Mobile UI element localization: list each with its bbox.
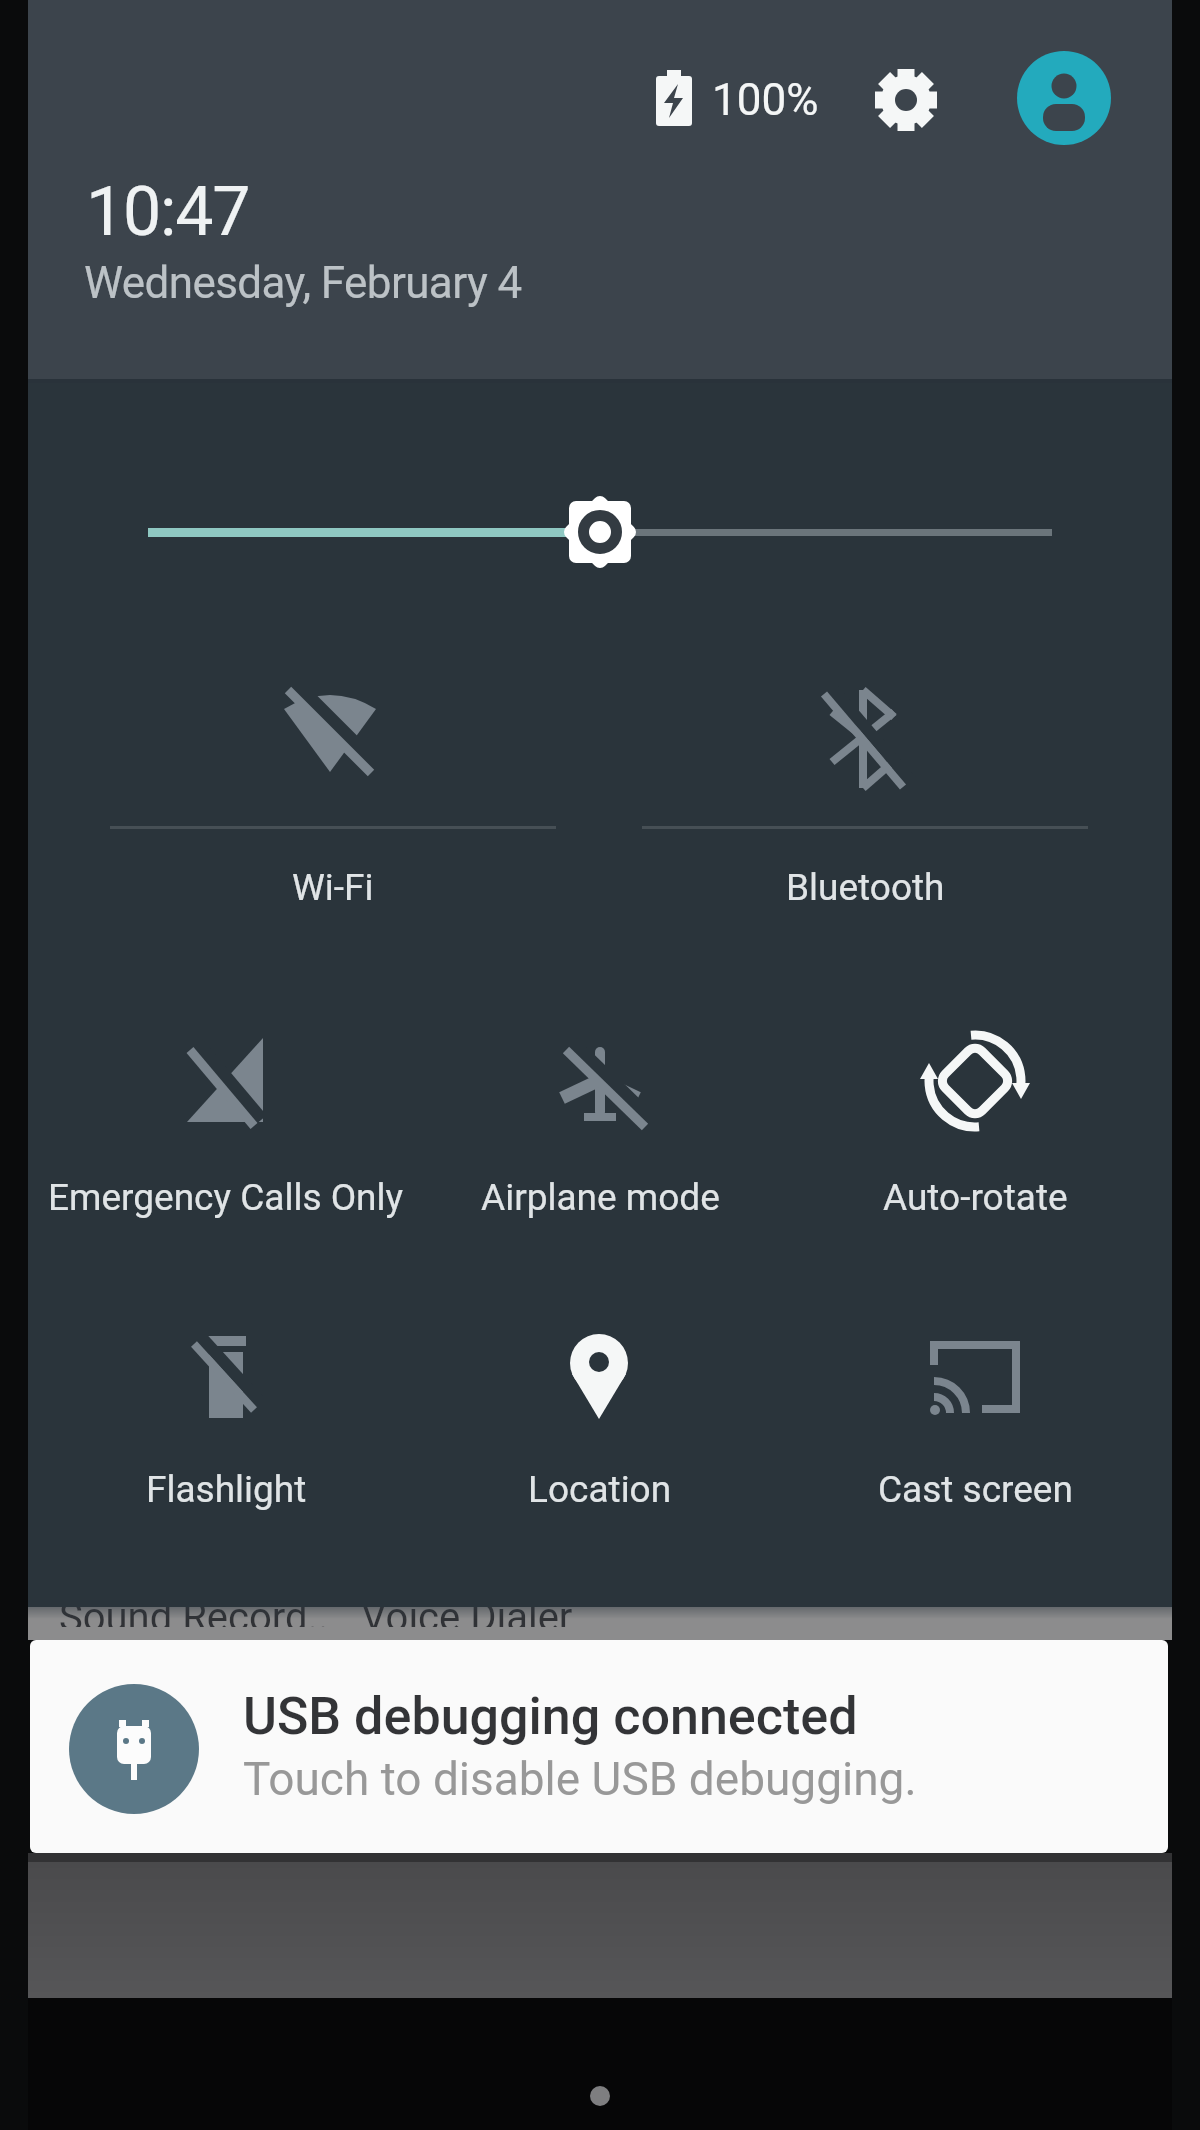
button[interactable]: [820, 1010, 1130, 1235]
staticText: Cast screen: [878, 1468, 1073, 1511]
staticText: Emergency Calls Only: [48, 1176, 404, 1219]
button[interactable]: [62, 1010, 390, 1235]
button[interactable]: [120, 480, 1080, 584]
staticText: Airplane mode: [481, 1176, 720, 1219]
staticText: 100%: [712, 74, 819, 126]
staticText: Location: [528, 1468, 672, 1511]
button[interactable]: [870, 58, 946, 142]
staticText: Sound Record..: [59, 1607, 329, 1627]
button[interactable]: [642, 645, 1088, 920]
button[interactable]: [1015, 49, 1113, 147]
button[interactable]: [470, 1300, 730, 1522]
button[interactable]: [100, 1300, 352, 1522]
button[interactable]: [110, 645, 556, 920]
staticText: Wi-Fi: [292, 866, 374, 909]
staticText: Auto-rotate: [883, 1176, 1068, 1219]
staticText: Touch to disable USB debugging.: [243, 1752, 917, 1806]
staticText: Flashlight: [146, 1468, 307, 1511]
button[interactable]: [30, 1640, 1168, 1853]
staticText: USB debugging connected: [243, 1686, 858, 1747]
staticText: 10:47: [86, 172, 250, 252]
staticText: Bluetooth: [786, 866, 945, 909]
staticText: Wednesday, February 4: [84, 257, 522, 309]
button[interactable]: [440, 1010, 760, 1235]
staticText: Voice Dialer: [361, 1607, 573, 1627]
button[interactable]: [850, 1300, 1100, 1522]
